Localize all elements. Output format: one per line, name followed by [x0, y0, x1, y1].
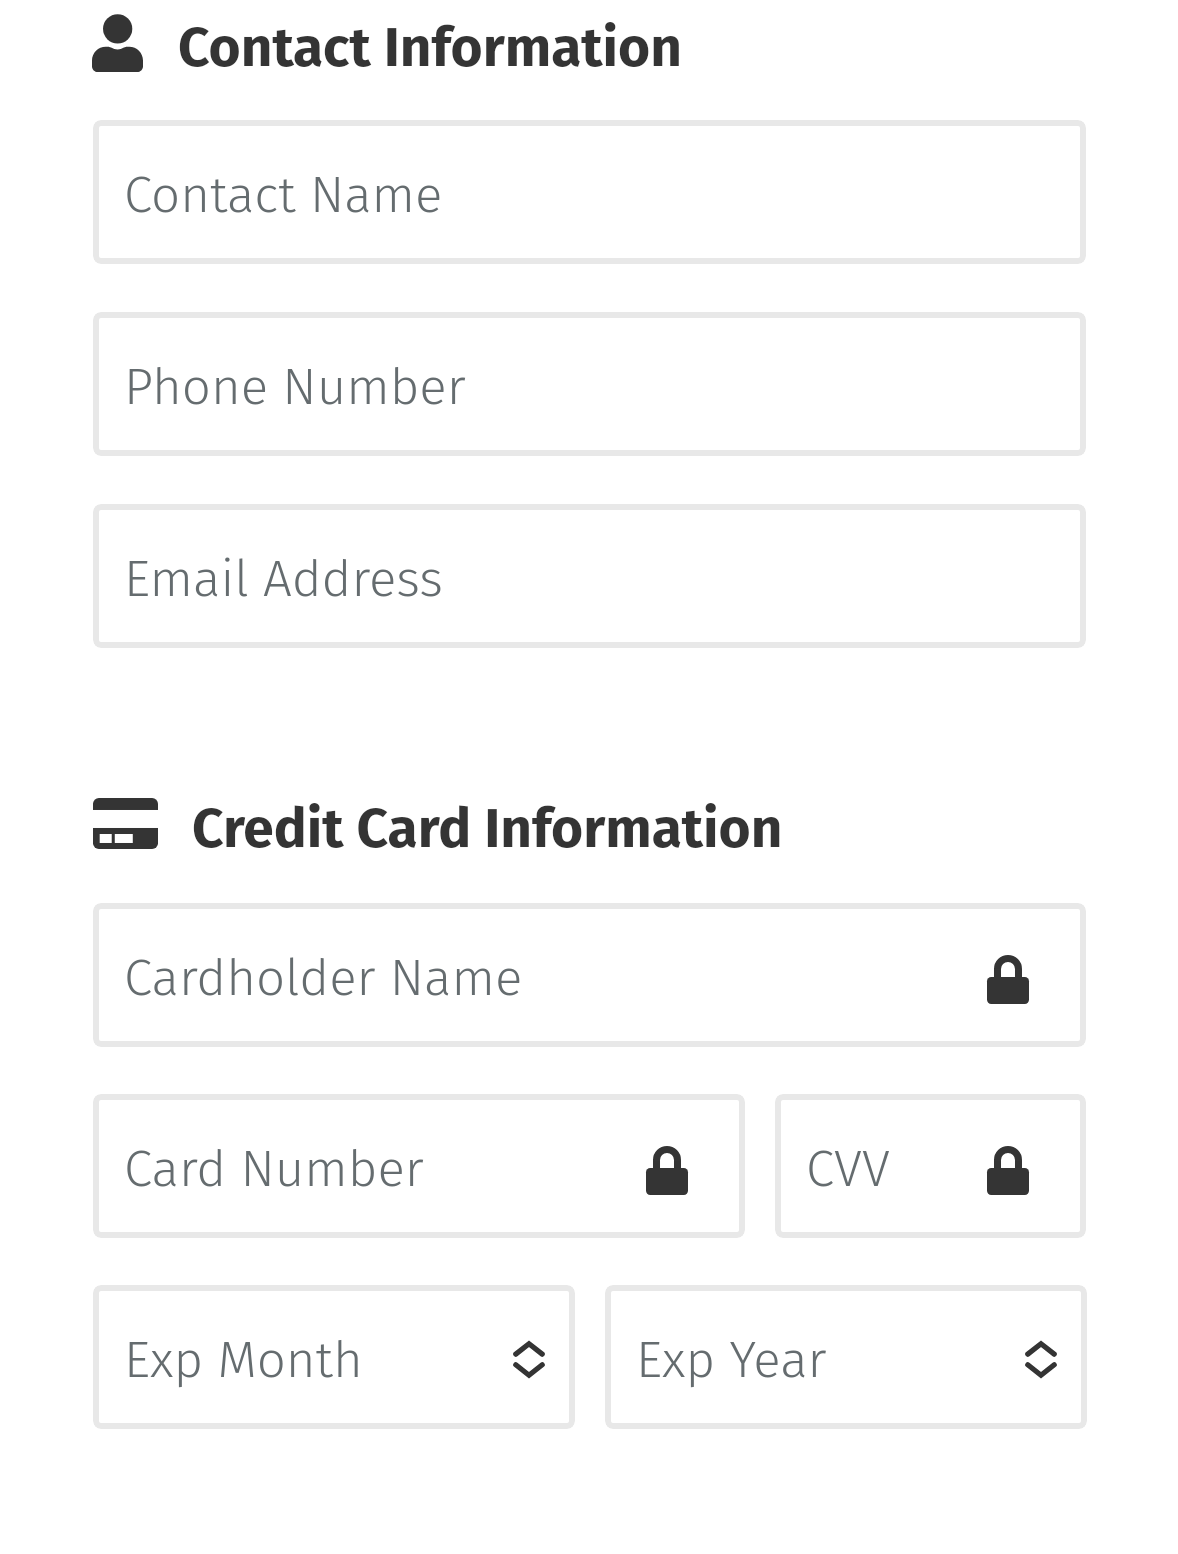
- staticText: Contact Information: [178, 15, 682, 81]
- button[interactable]: Contact Name: [93, 120, 1086, 264]
- button[interactable]: Cardholder Name: [93, 903, 1086, 1047]
- other: Select value: [1025, 1341, 1057, 1378]
- other: Secure field: [646, 1146, 688, 1195]
- button[interactable]: Exp Month: [93, 1285, 575, 1429]
- staticText: Exp Month: [124, 1329, 513, 1390]
- button[interactable]: Email Address: [93, 504, 1086, 648]
- button[interactable]: Credit Card Information: [192, 796, 783, 862]
- button[interactable]: Card Number: [93, 1094, 745, 1238]
- other: Secure field: [987, 1146, 1029, 1195]
- staticText: CVV: [806, 1138, 987, 1199]
- staticText: Phone Number: [124, 356, 1046, 417]
- staticText: Credit Card Information: [192, 796, 783, 862]
- staticText: Contact Name: [124, 164, 1046, 225]
- button[interactable]: Phone Number: [93, 312, 1086, 456]
- other: Contact: [92, 14, 143, 72]
- staticText: Email Address: [124, 548, 1046, 609]
- button[interactable]: CVV: [775, 1094, 1086, 1238]
- other: Credit card: [93, 798, 158, 849]
- other: Select value: [513, 1341, 545, 1378]
- other: Secure field: [987, 955, 1029, 1004]
- button[interactable]: Contact Information: [178, 15, 682, 81]
- button[interactable]: Exp Year: [605, 1285, 1087, 1429]
- staticText: Exp Year: [636, 1329, 1025, 1390]
- staticText: Cardholder Name: [124, 947, 987, 1008]
- staticText: Card Number: [124, 1138, 646, 1199]
